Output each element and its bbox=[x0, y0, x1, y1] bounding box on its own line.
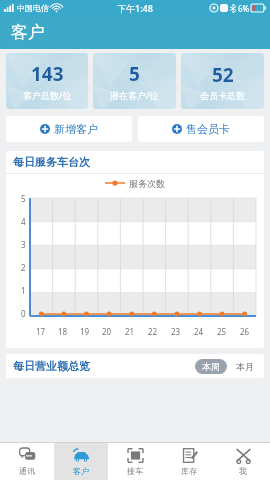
staticText: 19 bbox=[80, 326, 90, 337]
button[interactable]: 52 bbox=[181, 53, 264, 109]
button[interactable]: 143 bbox=[6, 53, 88, 109]
staticText: 143 bbox=[31, 61, 64, 87]
staticText: 6% bbox=[238, 3, 250, 14]
staticText: 17 bbox=[36, 326, 46, 337]
staticText: 通讯 bbox=[19, 466, 35, 476]
staticText: 客户 bbox=[73, 466, 89, 476]
staticText: 20 bbox=[102, 326, 112, 337]
staticText: 22 bbox=[148, 326, 158, 337]
button[interactable]: 5 bbox=[93, 53, 176, 109]
staticText: 2 bbox=[21, 262, 26, 273]
staticText: 新增客户 bbox=[54, 122, 98, 136]
staticText: 每日营业额总览 bbox=[13, 359, 90, 373]
staticText: 客户总数/位 bbox=[23, 89, 72, 101]
button[interactable]: 客户 bbox=[54, 443, 108, 480]
staticText: 本月 bbox=[236, 361, 254, 372]
staticText: 会员卡总数 bbox=[200, 90, 245, 101]
button[interactable]: 本月 bbox=[233, 359, 257, 374]
staticText: 52 bbox=[212, 62, 234, 88]
staticText: 25 bbox=[217, 326, 227, 337]
staticText: 24 bbox=[194, 326, 204, 337]
button[interactable]: 通讯 bbox=[0, 443, 54, 480]
staticText: 库存 bbox=[181, 466, 197, 476]
staticText: 下午1:48 bbox=[117, 2, 153, 14]
staticText: 18 bbox=[58, 326, 68, 337]
staticText: 接车 bbox=[127, 466, 143, 476]
button[interactable]: 我 bbox=[216, 443, 270, 480]
staticText: 1 bbox=[21, 285, 26, 296]
staticText: 4 bbox=[21, 216, 26, 227]
staticText: 21 bbox=[125, 326, 135, 337]
button[interactable]: 新增客户 bbox=[6, 116, 132, 142]
staticText: 售会员卡 bbox=[186, 122, 230, 136]
button[interactable]: 售会员卡 bbox=[138, 116, 264, 142]
staticText: 26 bbox=[240, 326, 250, 337]
staticText: 23 bbox=[171, 326, 181, 337]
staticText: 我 bbox=[239, 466, 247, 476]
staticText: 0 bbox=[21, 308, 26, 319]
staticText: 5 bbox=[21, 193, 26, 204]
staticText: 5 bbox=[129, 61, 140, 87]
staticText: 客户 bbox=[11, 22, 45, 43]
button[interactable]: 接车 bbox=[108, 443, 162, 480]
staticText: 本周 bbox=[202, 361, 220, 372]
button[interactable]: 库存 bbox=[162, 443, 216, 480]
button[interactable]: 本周 bbox=[195, 359, 227, 374]
staticText: 潜在客户/位 bbox=[110, 89, 159, 101]
staticText: 3 bbox=[21, 239, 26, 250]
staticText: 每日服务车台次 bbox=[13, 155, 90, 169]
staticText: 中国电信 bbox=[17, 3, 49, 13]
staticText: 服务次数 bbox=[129, 178, 165, 189]
